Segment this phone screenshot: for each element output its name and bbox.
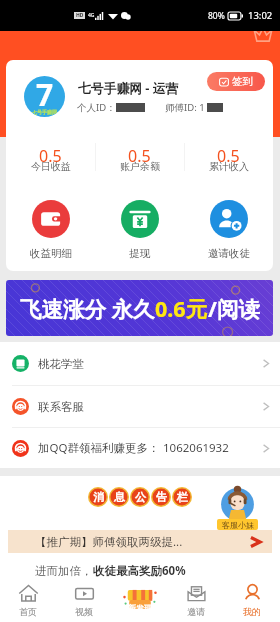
staticText: 桃花学堂 [38,357,84,371]
staticText: 邀请收徒 [208,247,250,260]
staticText: 息 [114,490,125,504]
button[interactable]: 我的 [224,578,280,622]
staticText: 个人ID： [77,101,116,114]
staticText: 加QQ群领福利赚更多： [38,440,160,456]
staticText: 消 [93,490,104,504]
button[interactable]: 签到 [207,72,265,91]
button[interactable]: 提现 [95,195,184,271]
staticText: 0.5 [217,145,240,167]
staticText: 邀请 [187,606,205,617]
button[interactable]: 0.5 [6,141,95,171]
staticText: 首页 [19,606,37,617]
staticText: 公 [135,490,146,504]
button[interactable]: 0.5 [184,141,273,171]
staticText: 进而加倍， [35,564,93,578]
staticText: 飞速涨分 永久 [20,294,155,323]
staticText: 0.6元 [155,294,208,323]
staticText: 收益明细 [30,247,72,260]
staticText: 联系客服 [38,400,84,414]
button[interactable]: 加QQ群领福利赚更多： [0,428,280,468]
staticText: 【推广期】师傅领取两级提... [35,534,183,550]
staticText: 7 [36,76,54,115]
button[interactable]: 收益明细 [6,195,95,271]
button[interactable]: 邀请收徒 [184,195,273,271]
staticText: 累计收入 [209,160,249,173]
staticText: 4G [88,12,95,19]
staticText: 客服小妹 [222,520,254,530]
staticText: 13:02 [248,9,273,22]
button[interactable]: 视频 [56,578,112,622]
staticText: 视频 [75,606,93,617]
staticText: 告 [156,490,167,504]
staticText: 账户余额 [120,160,160,173]
staticText: 新发现 [128,603,152,613]
staticText: 1062061932 [163,440,229,456]
staticText: 师傅ID: 1 [165,101,205,114]
button[interactable]: 新发现 [112,578,168,622]
staticText: 签到 [232,75,253,88]
button[interactable]: 首页 [0,578,56,622]
staticText: HD [76,12,84,19]
button[interactable]: 邀请 [168,578,224,622]
staticText: 我的 [243,606,261,617]
button[interactable]: 联系客服 [0,386,280,427]
staticText: 0.5 [39,145,62,167]
staticText: 80% [208,10,225,22]
button[interactable]: 飞速涨分 永久 [6,280,273,336]
staticText: 0.5 [128,145,151,167]
staticText: 七号手赚网 - 运营 [78,79,179,96]
button[interactable]: 【推广期】师傅领取两级提... [8,530,272,553]
staticText: 七号手赚网 [32,109,57,115]
button[interactable]: 进而加倍， [8,563,272,578]
staticText: 今日收益 [31,160,71,173]
staticText: 收徒最高奖励60% [93,563,186,578]
staticText: 栏 [177,490,188,504]
button[interactable]: 桃花学堂 [0,342,280,385]
staticText: 提现 [129,247,150,260]
staticText: /阅读 [208,294,260,323]
button[interactable]: 0.5 [95,141,184,171]
